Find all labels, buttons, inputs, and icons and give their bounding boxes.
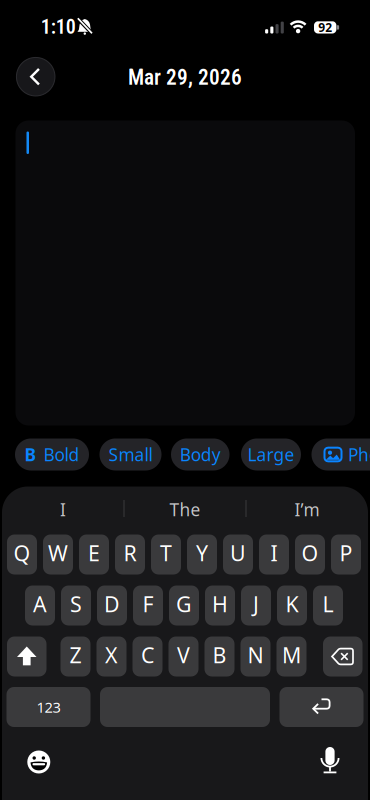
button[interactable]: Back (16, 57, 55, 96)
staticText: L (322, 590, 333, 618)
button[interactable]: F (133, 585, 163, 625)
button[interactable]: I’m (248, 493, 366, 526)
button[interactable]: Photo (311, 438, 370, 470)
button[interactable]: N (240, 636, 270, 676)
staticText: S (70, 590, 82, 618)
staticText: G (176, 590, 192, 618)
button[interactable]: Large (241, 438, 301, 470)
button[interactable]: Z (60, 636, 90, 676)
button[interactable]: Y (187, 534, 217, 574)
button[interactable]: M (276, 636, 306, 676)
button[interactable]: E (79, 534, 109, 574)
staticText: 92 (318, 19, 332, 35)
button[interactable]: T (151, 534, 181, 574)
button[interactable]: The (126, 493, 244, 526)
staticText: D (104, 590, 120, 618)
staticText: Photo (348, 443, 370, 466)
button[interactable]: Q (7, 534, 37, 574)
button[interactable]: W (43, 534, 73, 574)
staticText: T (160, 539, 172, 567)
staticText: Large (247, 443, 294, 466)
button[interactable]: O (295, 534, 325, 574)
staticText: Q (13, 539, 30, 567)
button[interactable]: V (168, 636, 198, 676)
button[interactable]: B (204, 636, 234, 676)
staticText: Body (180, 443, 221, 466)
staticText: I’m (294, 498, 319, 521)
button[interactable]: X (96, 636, 126, 676)
staticText: M (282, 641, 301, 669)
button[interactable]: Emoji (24, 747, 54, 777)
staticText: F (142, 590, 153, 618)
button[interactable]: A (25, 585, 55, 625)
staticText: U (230, 539, 246, 567)
staticText: J (253, 590, 259, 618)
staticText: O (301, 539, 318, 567)
staticText: B (212, 641, 226, 669)
staticText: I (270, 539, 277, 567)
button[interactable]: L (313, 585, 343, 625)
staticText: Z (69, 641, 81, 669)
button[interactable]: H (205, 585, 235, 625)
staticText: 123 (36, 697, 60, 717)
button[interactable]: D (97, 585, 127, 625)
button[interactable]: C (132, 636, 162, 676)
button[interactable]: I (259, 534, 289, 574)
button[interactable]: Body (171, 438, 229, 470)
button[interactable]: I (4, 493, 122, 526)
button[interactable]: Return (279, 687, 363, 727)
staticText: R (123, 539, 136, 567)
button[interactable]: R (115, 534, 145, 574)
button[interactable]: J (241, 585, 271, 625)
button[interactable]: Shift (7, 636, 46, 676)
staticText: 1:10 (41, 15, 76, 39)
button[interactable]: P (331, 534, 361, 574)
button[interactable]: B (15, 438, 89, 470)
staticText: K (285, 590, 298, 618)
staticText: A (33, 590, 47, 618)
staticText: I (60, 498, 66, 521)
button[interactable]: Small (99, 438, 161, 470)
button[interactable]: S (61, 585, 91, 625)
staticText: X (105, 641, 118, 669)
button[interactable]: G (169, 585, 199, 625)
staticText: The (169, 498, 200, 521)
staticText: Bold (43, 443, 79, 466)
button[interactable]: Dictate (315, 744, 345, 776)
button[interactable]: K (277, 585, 307, 625)
staticText: Mar 29, 2026 (128, 65, 242, 90)
staticText: W (48, 539, 68, 567)
staticText: N (247, 641, 263, 669)
button[interactable]: U (223, 534, 253, 574)
staticText: V (177, 641, 190, 669)
staticText: C (141, 641, 154, 669)
staticText: H (212, 590, 228, 618)
staticText: Y (196, 539, 208, 567)
staticText: E (88, 539, 100, 567)
staticText: P (339, 539, 352, 567)
button[interactable]: Delete (323, 636, 362, 676)
staticText: Small (108, 443, 152, 466)
staticText: B (24, 443, 36, 466)
button[interactable]: 123 (6, 687, 90, 727)
